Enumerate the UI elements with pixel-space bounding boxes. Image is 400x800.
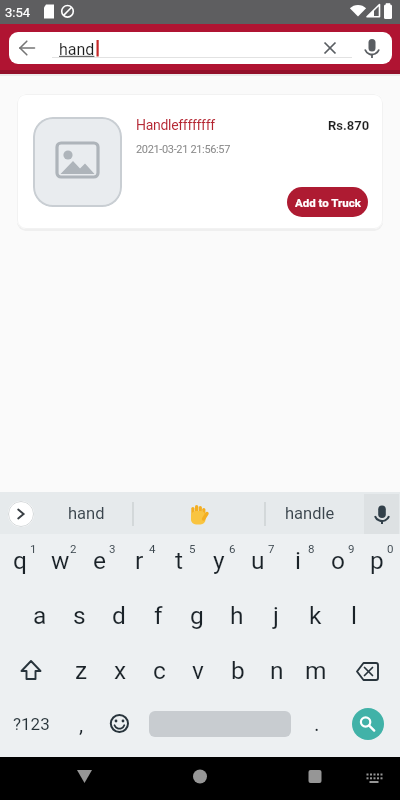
staticText: 7	[268, 542, 275, 555]
button[interactable]: w	[40, 536, 80, 584]
staticText: f	[154, 601, 163, 630]
button[interactable]: j	[256, 591, 296, 639]
staticText: p	[370, 546, 384, 575]
staticText: hand	[68, 504, 105, 523]
staticText: ?123	[13, 714, 50, 734]
staticText: 2	[70, 542, 77, 555]
staticText: r	[135, 546, 144, 575]
button[interactable]: ?123	[2, 700, 60, 748]
staticText: 1	[30, 542, 37, 555]
staticText: x	[114, 656, 127, 685]
staticText: e	[93, 546, 106, 575]
staticText: 0	[387, 542, 394, 555]
staticText: 4	[149, 542, 156, 555]
button[interactable]: Add to Truck	[287, 187, 368, 217]
staticText: 3	[109, 542, 116, 555]
button[interactable]	[355, 757, 395, 800]
button[interactable]: f	[138, 591, 178, 639]
staticText: ,	[79, 713, 84, 738]
button[interactable]: p	[357, 536, 397, 584]
staticText: 5	[189, 542, 196, 555]
staticText: Handleffffffff	[136, 117, 215, 133]
button[interactable]: k	[295, 591, 335, 639]
staticText: b	[231, 656, 245, 685]
button[interactable]	[285, 757, 345, 800]
staticText: j	[273, 601, 279, 630]
button[interactable]: i	[278, 536, 318, 584]
button[interactable]	[364, 494, 399, 534]
button[interactable]: c	[139, 646, 179, 694]
staticText: 2021-03-21 21:56:57	[136, 143, 231, 156]
button[interactable]: g	[177, 591, 217, 639]
staticText: i	[295, 546, 301, 575]
button[interactable]: h	[217, 591, 257, 639]
staticText: a	[33, 601, 47, 630]
staticText: n	[270, 656, 284, 685]
staticText: w	[51, 546, 70, 575]
staticText: o	[331, 546, 345, 575]
staticText: hand	[59, 40, 95, 59]
button[interactable]	[149, 711, 291, 737]
staticText: 3:54	[5, 5, 31, 20]
staticText: Add to Truck	[295, 196, 361, 209]
staticText: m	[305, 656, 327, 685]
staticText: l	[351, 601, 357, 630]
button[interactable]: u	[238, 536, 278, 584]
button[interactable]: .	[302, 700, 332, 748]
staticText: handle	[285, 504, 335, 523]
button[interactable]: y	[199, 536, 239, 584]
button[interactable]: q	[0, 536, 40, 584]
staticText: d	[112, 601, 126, 630]
button[interactable]: z	[61, 646, 101, 694]
staticText: Rs.870	[328, 118, 370, 133]
staticText: k	[309, 601, 322, 630]
button[interactable]	[170, 757, 230, 800]
staticText: .	[314, 712, 320, 737]
staticText: h	[230, 601, 244, 630]
button[interactable]: s	[59, 591, 99, 639]
staticText: y	[213, 546, 225, 575]
button[interactable]: a	[20, 591, 60, 639]
button[interactable]	[346, 648, 392, 696]
staticText: 8	[308, 542, 315, 555]
staticText: t	[175, 546, 184, 575]
staticText: 9	[348, 542, 355, 555]
button[interactable]: d	[99, 591, 139, 639]
button[interactable]: x	[100, 646, 140, 694]
button[interactable]: hand	[41, 499, 131, 527]
button[interactable]: l	[334, 591, 374, 639]
staticText: g	[190, 601, 204, 630]
staticText: q	[13, 546, 27, 575]
button[interactable]: ,	[66, 701, 96, 749]
button[interactable]: o	[318, 536, 358, 584]
staticText: u	[251, 546, 265, 575]
button[interactable]	[17, 94, 383, 229]
button[interactable]	[8, 501, 34, 527]
button[interactable]: m	[296, 646, 336, 694]
staticText: 6	[229, 542, 236, 555]
button[interactable]	[352, 708, 384, 740]
button[interactable]: v	[178, 646, 218, 694]
button[interactable]: r	[119, 536, 159, 584]
button[interactable]: e	[79, 536, 119, 584]
button[interactable]: n	[257, 646, 297, 694]
staticText: v	[192, 656, 204, 685]
button[interactable]: handle	[265, 499, 355, 527]
button[interactable]	[9, 32, 392, 64]
button[interactable]: t	[159, 536, 199, 584]
button[interactable]	[8, 648, 54, 696]
staticText: s	[73, 601, 86, 630]
staticText: c	[153, 656, 166, 685]
staticText: z	[75, 656, 88, 685]
button[interactable]: b	[218, 646, 258, 694]
button[interactable]	[101, 700, 139, 748]
button[interactable]	[55, 757, 115, 800]
